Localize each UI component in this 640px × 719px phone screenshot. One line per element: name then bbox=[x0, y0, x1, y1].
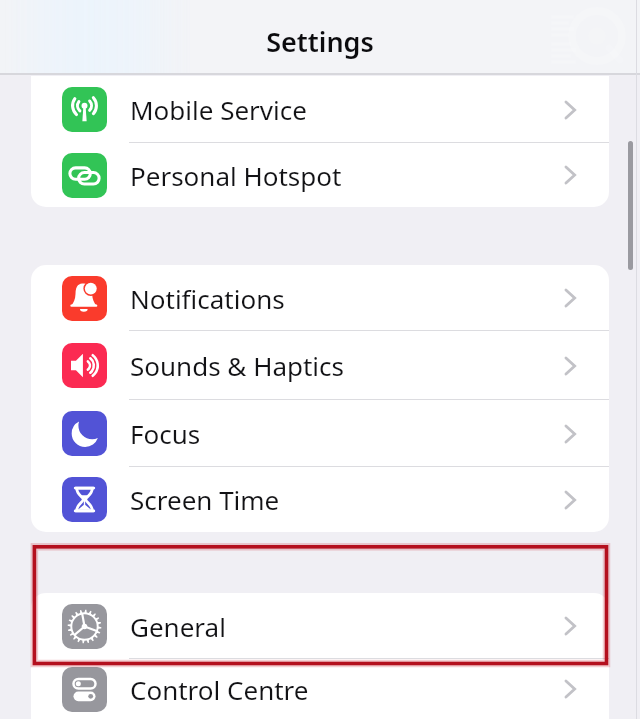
staticText: Control Centre bbox=[130, 672, 309, 707]
staticText: Sounds & Haptics bbox=[130, 348, 345, 383]
staticText: Personal Hotspot bbox=[130, 158, 342, 193]
button[interactable]: Control Centre bbox=[31, 659, 609, 719]
staticText: Screen Time bbox=[130, 482, 280, 517]
staticText: Focus bbox=[130, 416, 201, 451]
staticText: Notifications bbox=[130, 281, 285, 316]
button[interactable]: Mobile Service bbox=[31, 76, 609, 143]
staticText: General bbox=[130, 609, 226, 644]
button[interactable]: Personal Hotspot bbox=[31, 143, 609, 207]
button[interactable]: Screen Time bbox=[31, 467, 609, 532]
button[interactable]: Notifications bbox=[31, 265, 609, 331]
staticText: Mobile Service bbox=[130, 92, 307, 127]
button[interactable]: General bbox=[31, 593, 609, 659]
button[interactable]: Focus bbox=[31, 400, 609, 467]
staticText: Settings bbox=[266, 23, 374, 60]
button[interactable]: Sounds & Haptics bbox=[31, 331, 609, 400]
